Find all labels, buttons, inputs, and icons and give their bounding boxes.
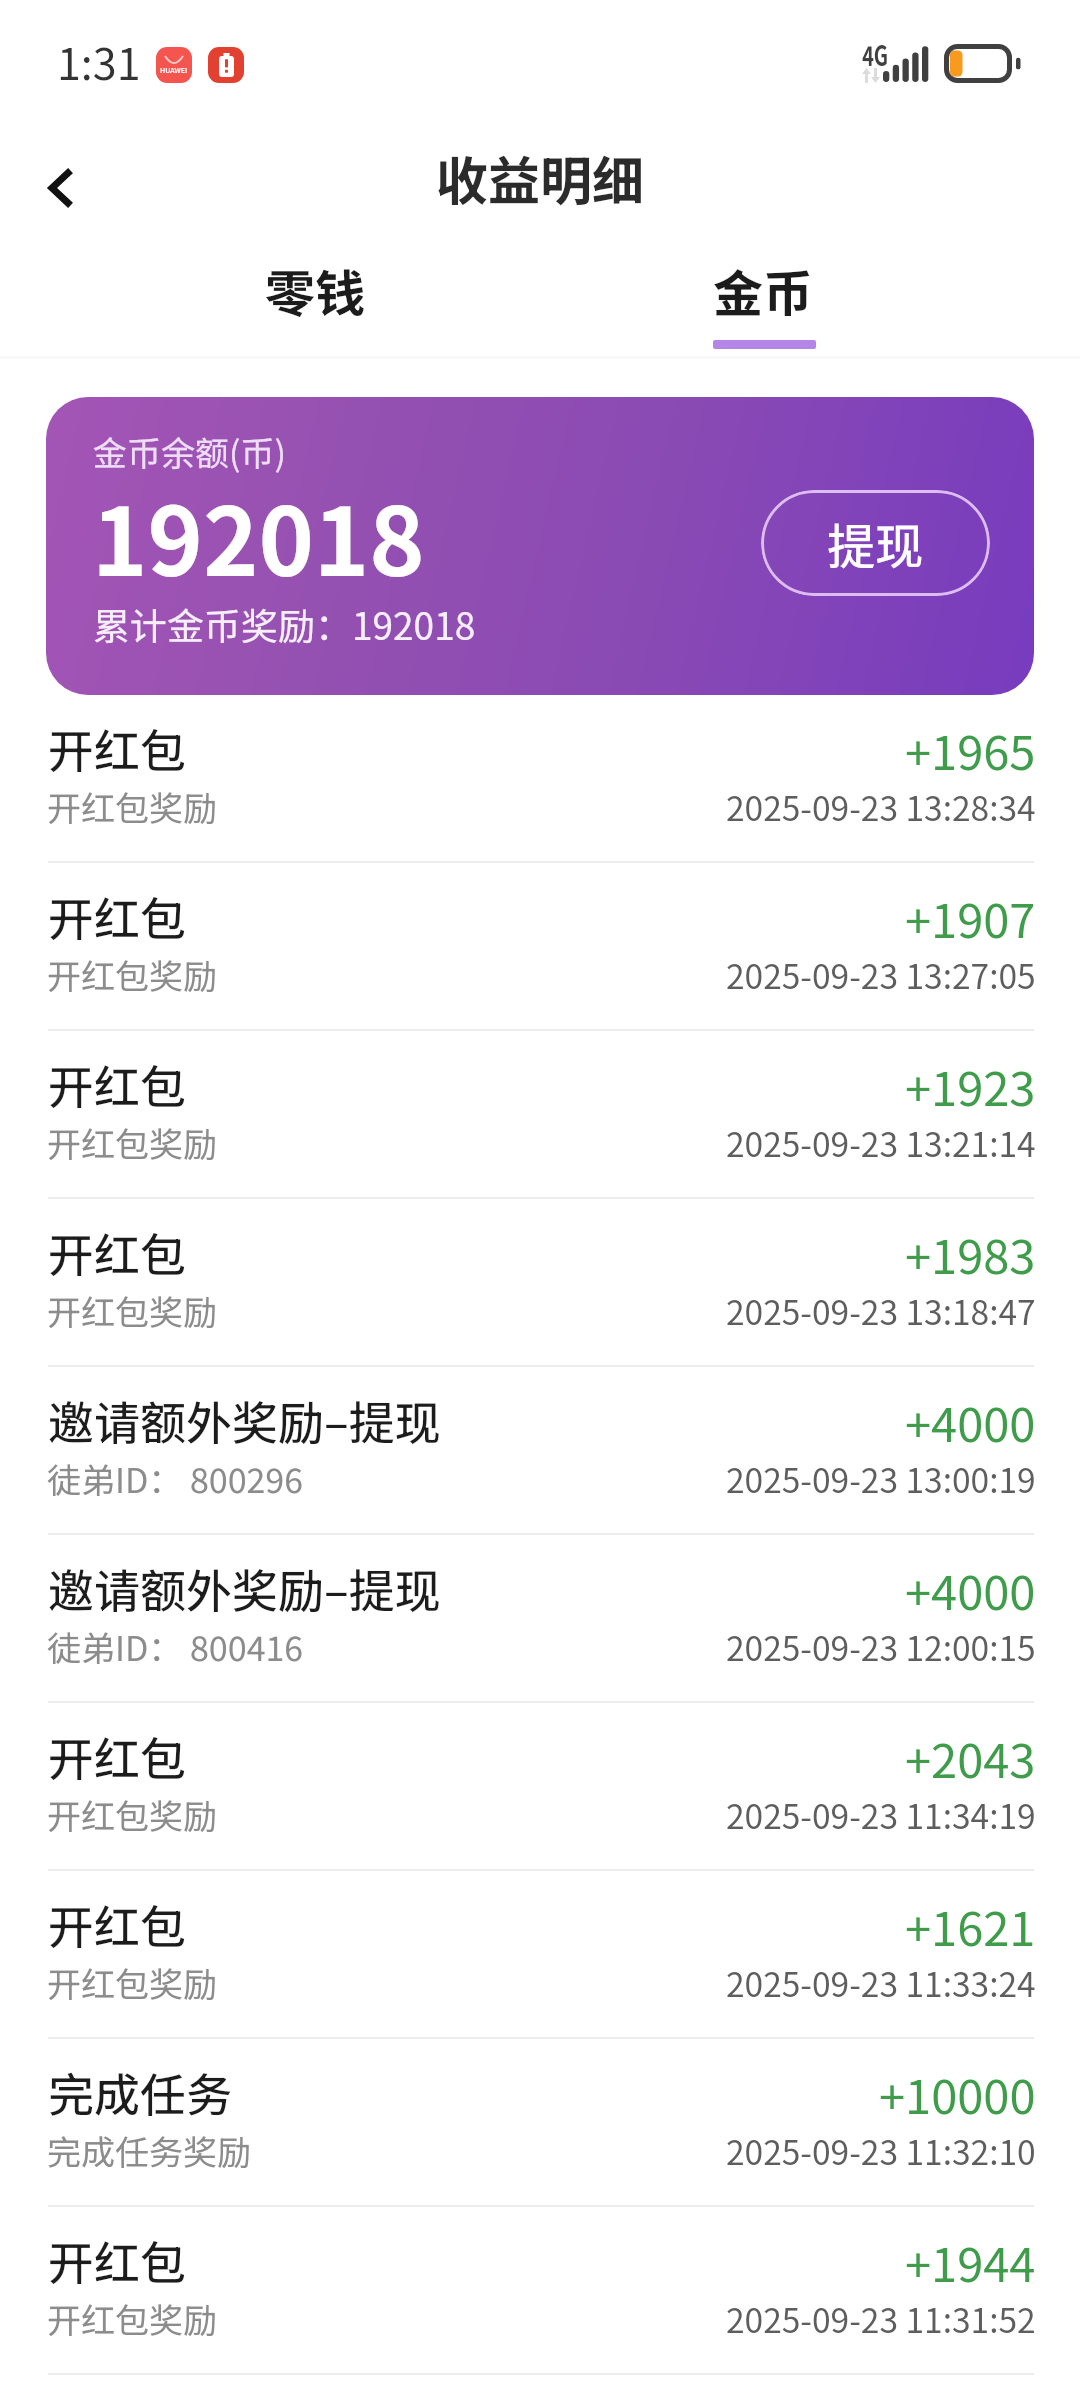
staticText: 开红包 xyxy=(48,1051,186,1118)
staticText: +10000 xyxy=(879,2059,1036,2127)
staticText: 完成任务 xyxy=(48,2059,232,2126)
staticText: +4000 xyxy=(905,1387,1036,1455)
staticText: 2025-09-23 13:21:14 xyxy=(726,1118,1036,1167)
button[interactable]: 开红包 xyxy=(0,2207,1080,2375)
staticText: 提现 xyxy=(827,508,924,578)
staticText: 金币余额(币) xyxy=(93,427,286,476)
staticText: 累计金币奖励：192018 xyxy=(93,597,476,651)
staticText: +1907 xyxy=(905,883,1036,951)
staticText: 开红包奖励 xyxy=(47,782,217,831)
staticText: 徒弟ID： 800296 xyxy=(47,1454,304,1503)
staticText: 2025-09-23 11:32:10 xyxy=(726,2126,1036,2175)
staticText: +1621 xyxy=(905,1891,1036,1959)
staticText: +1983 xyxy=(905,1219,1036,1287)
staticText: 1:31 xyxy=(57,30,141,92)
button[interactable]: 提现 xyxy=(761,490,990,596)
staticText: 2025-09-23 11:33:24 xyxy=(726,1958,1036,2007)
staticText: HUAWEI xyxy=(160,65,188,75)
button[interactable]: 邀请额外奖励–提现 xyxy=(0,1367,1080,1535)
staticText: 收益明细 xyxy=(436,140,645,215)
button[interactable]: 邀请额外奖励–提现 xyxy=(0,1535,1080,1703)
staticText: 邀请额外奖励–提现 xyxy=(48,1555,441,1622)
button[interactable]: 金币 xyxy=(638,244,888,362)
button[interactable]: 开红包 xyxy=(0,1031,1080,1199)
staticText: 徒弟ID： 800416 xyxy=(47,1622,304,1671)
staticText: 开红包奖励 xyxy=(47,2294,217,2343)
staticText: 邀请额外奖励–提现 xyxy=(48,1387,441,1454)
staticText: 2025-09-23 13:18:47 xyxy=(726,1286,1036,1335)
button[interactable]: 开红包 xyxy=(0,1199,1080,1367)
button[interactable]: 开红包 xyxy=(0,863,1080,1031)
staticText: +2043 xyxy=(905,1723,1036,1791)
staticText: +4000 xyxy=(905,1555,1036,1623)
button[interactable]: 开红包 xyxy=(0,1871,1080,2039)
button[interactable]: 零钱 xyxy=(190,244,440,362)
button[interactable]: 完成任务 xyxy=(0,2039,1080,2207)
staticText: 开红包 xyxy=(48,1723,186,1790)
button[interactable]: 开红包 xyxy=(0,695,1080,863)
staticText: 2025-09-23 11:34:19 xyxy=(726,1790,1036,1839)
staticText: 零钱 xyxy=(265,254,365,326)
staticText: 金币 xyxy=(713,254,813,326)
staticText: 开红包奖励 xyxy=(47,950,217,999)
staticText: +1923 xyxy=(905,1051,1036,1119)
staticText: 开红包奖励 xyxy=(47,1958,217,2007)
staticText: 开红包 xyxy=(48,883,186,950)
staticText: 开红包奖励 xyxy=(47,1790,217,1839)
staticText: +1944 xyxy=(905,2227,1036,2295)
staticText: 开红包奖励 xyxy=(47,1118,217,1167)
staticText: 开红包 xyxy=(48,1891,186,1958)
staticText: 开红包 xyxy=(48,715,186,782)
button[interactable]: 开红包 xyxy=(0,1703,1080,1871)
staticText: +1965 xyxy=(905,715,1036,783)
staticText: 开红包 xyxy=(48,2227,186,2294)
staticText: 完成任务奖励 xyxy=(47,2126,251,2175)
staticText: 开红包奖励 xyxy=(47,1286,217,1335)
staticText: 2025-09-23 12:00:15 xyxy=(726,1622,1036,1671)
staticText: 2025-09-23 13:00:19 xyxy=(726,1454,1036,1503)
staticText: 2025-09-23 11:31:52 xyxy=(726,2294,1036,2343)
staticText: 192018 xyxy=(92,467,425,603)
staticText: 4G xyxy=(862,35,889,74)
staticText: 2025-09-23 13:28:34 xyxy=(726,782,1036,831)
staticText: 2025-09-23 13:27:05 xyxy=(726,950,1036,999)
button[interactable]: Back xyxy=(7,135,113,241)
staticText: 开红包 xyxy=(48,1219,186,1286)
